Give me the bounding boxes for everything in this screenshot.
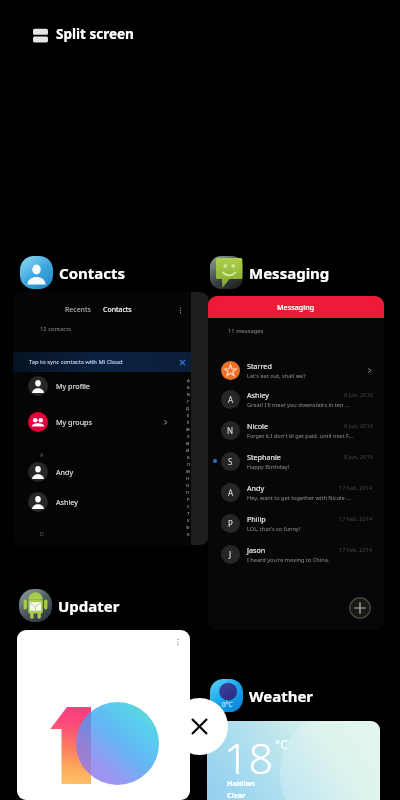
staticText: Happy Birthday! xyxy=(247,463,290,471)
staticText: Starred xyxy=(247,361,272,371)
staticText: Updater xyxy=(58,596,120,616)
staticText: П xyxy=(186,490,190,497)
staticText: 8 Jun, 2016 xyxy=(344,391,373,399)
staticText: 8 Jun, 2016 xyxy=(344,422,373,430)
staticText: Б xyxy=(187,385,190,392)
staticText: Andy xyxy=(56,467,74,477)
staticText: Contacts xyxy=(103,305,132,315)
staticText: A xyxy=(228,487,234,498)
button[interactable]: Close xyxy=(171,698,228,755)
button[interactable]: Contacts xyxy=(20,256,126,289)
button[interactable]: Messaging xyxy=(208,296,384,630)
staticText: 18 xyxy=(224,728,274,787)
staticText: A xyxy=(40,451,44,458)
staticText: I heard you're moving to China. xyxy=(247,556,330,564)
staticText: Х xyxy=(187,532,190,539)
staticText: °C xyxy=(275,736,288,752)
staticText: J xyxy=(229,549,232,560)
staticText: Weather xyxy=(249,686,314,706)
staticText: P xyxy=(228,518,233,529)
staticText: Е xyxy=(187,413,190,420)
staticText: A xyxy=(228,394,234,405)
staticText: Nicole xyxy=(247,421,269,431)
staticText: 8 Jun, 2016 xyxy=(344,453,373,461)
staticText: My groups xyxy=(56,417,92,427)
staticText: Jason xyxy=(247,545,266,555)
staticText: Tap to sync contacts with Mi Cloud xyxy=(29,358,123,366)
staticText: 11 messages xyxy=(228,327,264,335)
button[interactable]: Tap to sync contacts with Mi Cloud xyxy=(13,352,191,372)
staticText: Ж xyxy=(186,427,190,434)
staticText: Ф xyxy=(186,525,190,532)
button[interactable]: More options xyxy=(172,636,184,648)
staticText: Р xyxy=(187,497,190,504)
staticText: Ё xyxy=(187,420,190,427)
staticText: Stephanie xyxy=(247,452,281,462)
staticText: Haidian xyxy=(227,778,255,788)
button[interactable]: Ashley xyxy=(28,487,169,517)
staticText: Ashley xyxy=(247,390,269,400)
staticText: Great! I'll meet you downstairs in ten .… xyxy=(247,401,350,409)
staticText: А xyxy=(187,378,190,385)
staticText: 0°C xyxy=(222,700,233,709)
button[interactable]: A xyxy=(208,477,384,507)
staticText: Andy xyxy=(247,483,265,493)
staticText: Philip xyxy=(247,514,266,524)
staticText: S xyxy=(228,456,233,467)
button[interactable]: Starred xyxy=(208,355,384,385)
button[interactable]: Recents xyxy=(65,305,91,315)
staticText: N xyxy=(227,425,234,436)
staticText: Л xyxy=(187,462,190,469)
staticText: Contacts xyxy=(59,263,126,283)
staticText: Clear xyxy=(227,790,246,800)
staticText: Ashley xyxy=(56,497,78,507)
button[interactable]: Andy xyxy=(28,457,169,487)
staticText: Hey, want to get together with Nicole ..… xyxy=(247,494,351,502)
staticText: Recents xyxy=(65,305,91,315)
staticText: Й xyxy=(186,448,190,455)
staticText: С xyxy=(187,504,190,511)
button[interactable]: Dismiss xyxy=(176,356,188,368)
staticText: Let's eat out, shall we? xyxy=(247,372,306,380)
staticText: 17 Feb, 2014 xyxy=(339,484,373,492)
staticText: И xyxy=(186,441,190,448)
staticText: Г xyxy=(187,399,190,406)
button[interactable]: My profile xyxy=(28,371,169,401)
staticText: В xyxy=(187,392,190,399)
staticText: Messaging xyxy=(277,302,315,312)
button[interactable]: 18 xyxy=(207,721,380,800)
button[interactable]: S xyxy=(208,446,384,476)
button[interactable]: N xyxy=(208,415,384,445)
staticText: 17 Feb, 2014 xyxy=(339,546,373,554)
staticText: Messaging xyxy=(249,263,330,283)
staticText: 17 Feb, 2014 xyxy=(339,515,373,523)
button[interactable]: Updater xyxy=(19,589,120,622)
staticText: Д xyxy=(186,406,190,413)
staticText: Н xyxy=(186,476,190,483)
staticText: Split screen xyxy=(56,25,134,43)
staticText: Т xyxy=(187,511,190,518)
staticText: D xyxy=(40,530,44,537)
staticText: М xyxy=(186,469,190,476)
button[interactable]: New message xyxy=(349,597,371,619)
button[interactable]: 0°C xyxy=(210,679,314,712)
button[interactable]: My groups xyxy=(28,407,169,437)
button[interactable]: More options xyxy=(175,305,185,315)
staticText: 12 contacts xyxy=(40,325,72,333)
staticText: З xyxy=(187,434,190,441)
button[interactable]: Messaging xyxy=(210,256,330,289)
button[interactable]: J xyxy=(208,539,384,569)
staticText: О xyxy=(186,483,190,490)
button[interactable]: A xyxy=(208,384,384,414)
staticText: My profile xyxy=(56,381,90,391)
button[interactable]: Split screen xyxy=(33,25,134,43)
staticText: У xyxy=(187,518,190,525)
button[interactable]: More options xyxy=(17,630,190,800)
button[interactable]: P xyxy=(208,508,384,538)
button[interactable]: Contacts xyxy=(103,305,132,315)
button[interactable]: Recents xyxy=(13,292,209,545)
staticText: LOL, that's so funny! xyxy=(247,525,301,533)
staticText: К xyxy=(187,455,190,462)
staticText: Forget it,I don't bl get paid. until nex… xyxy=(247,432,353,440)
